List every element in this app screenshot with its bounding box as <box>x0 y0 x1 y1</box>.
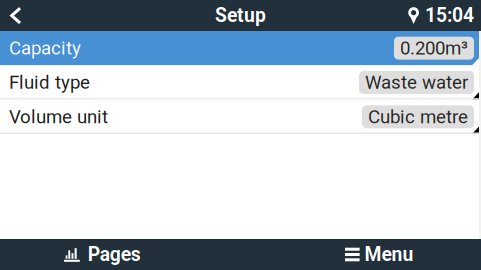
button[interactable]: Fluid type <box>0 65 479 100</box>
button[interactable]: Back <box>0 0 34 31</box>
staticText: Fluid type <box>9 71 90 93</box>
button[interactable]: Menu <box>240 239 481 270</box>
button[interactable]: Capacity <box>0 31 479 65</box>
staticText: Volume unit <box>9 106 108 128</box>
button[interactable]: Volume unit <box>0 100 479 134</box>
staticText: Pages <box>88 243 141 266</box>
staticText: Capacity <box>9 37 81 59</box>
staticText: 0.200m³ <box>400 37 468 59</box>
staticText: 15:04 <box>425 4 474 27</box>
staticText: Cubic metre <box>368 106 468 128</box>
staticText: Menu <box>365 243 414 266</box>
staticText: Setup <box>215 4 266 27</box>
staticText: Waste water <box>365 71 468 93</box>
button[interactable]: Pages <box>0 239 240 270</box>
